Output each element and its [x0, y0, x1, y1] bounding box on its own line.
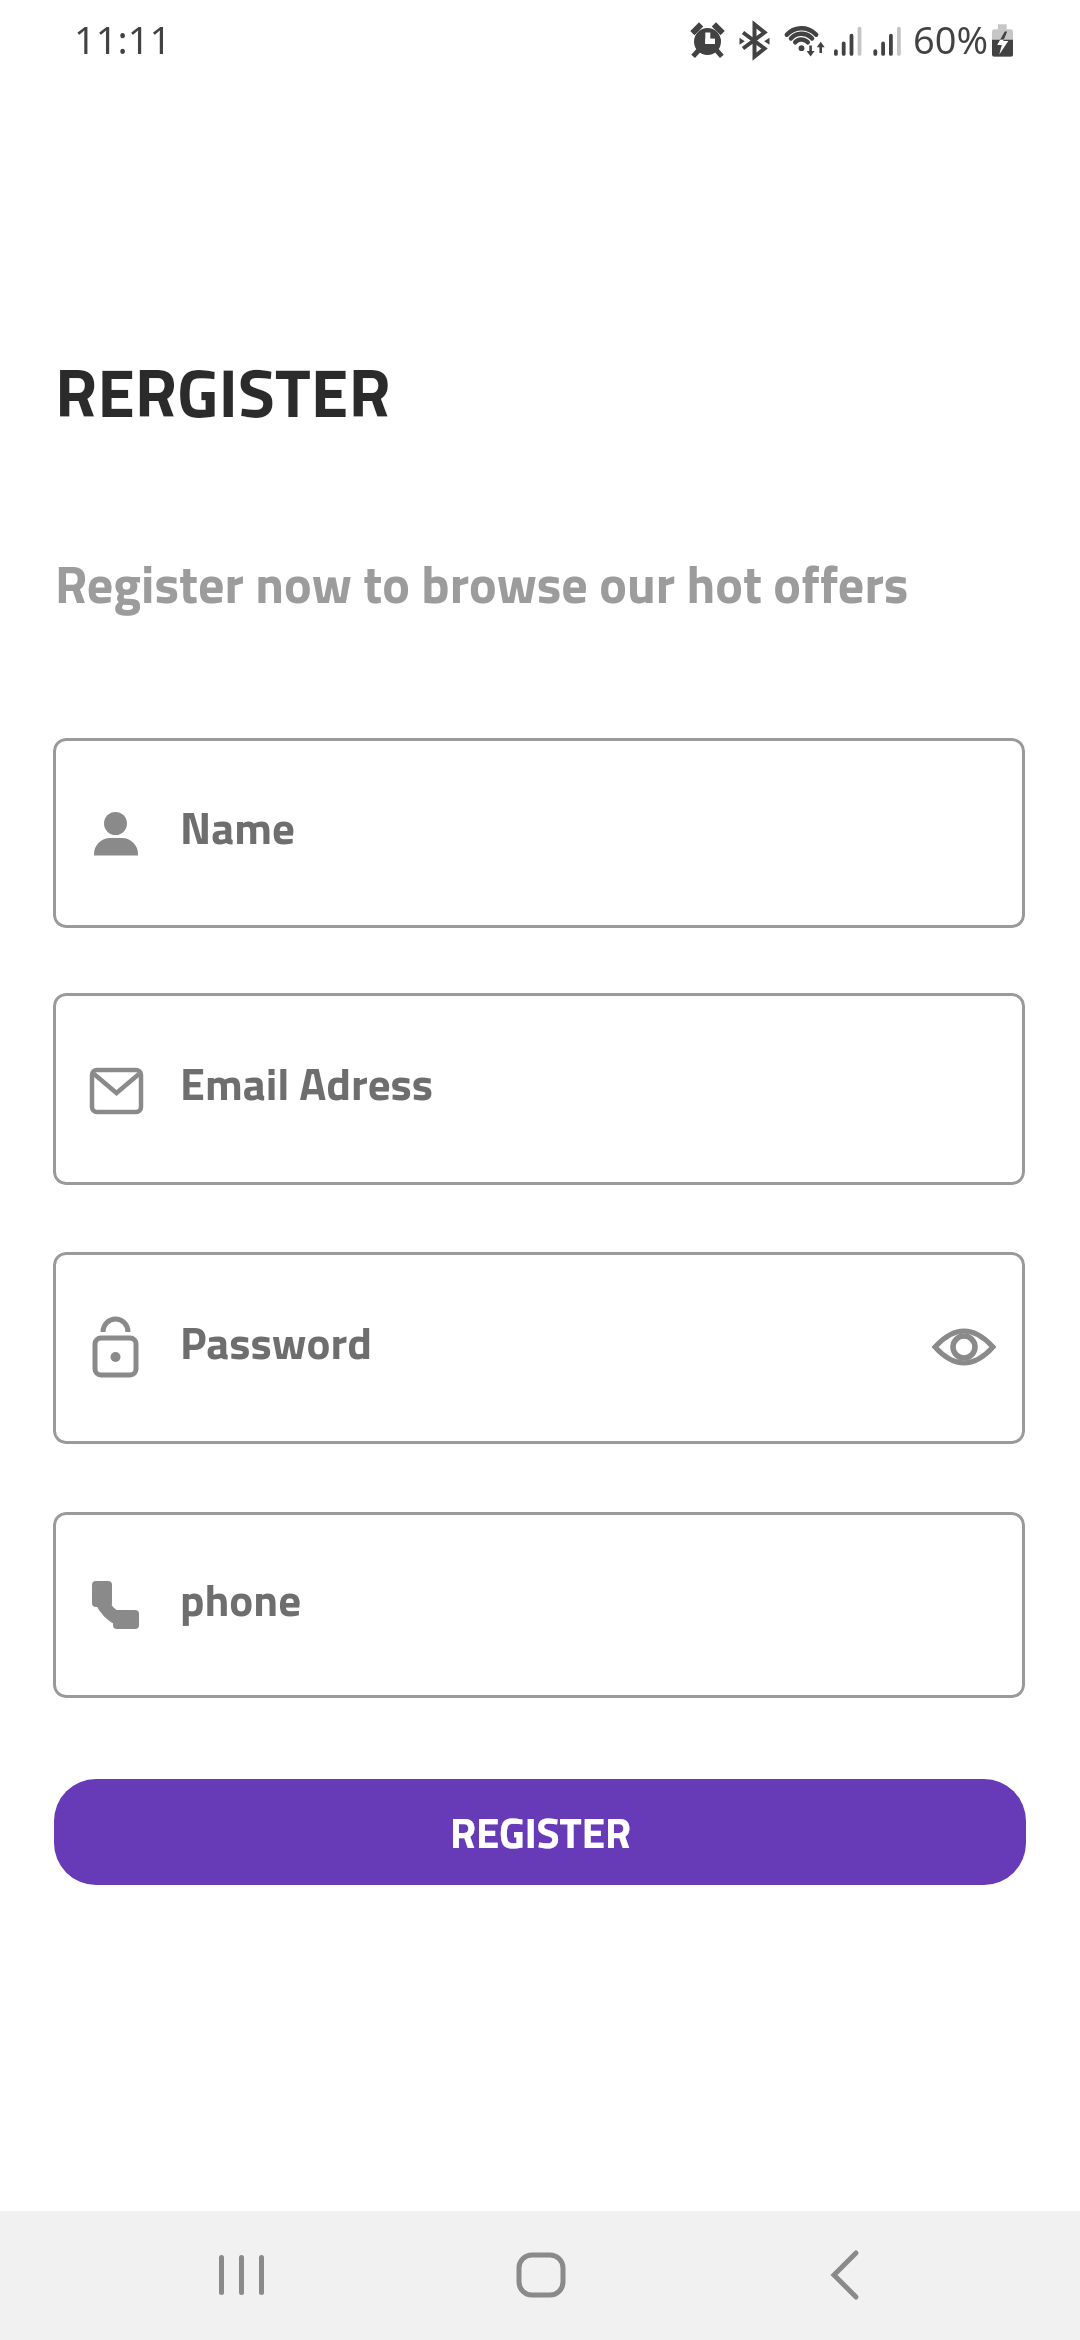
staticText: 60% — [913, 13, 989, 65]
button[interactable]: Password — [53, 1252, 1025, 1444]
button[interactable]: Name — [53, 738, 1025, 928]
button[interactable] — [190, 2241, 290, 2311]
button[interactable] — [800, 2241, 900, 2311]
staticText: Register now to browse our hot offers — [55, 544, 909, 623]
staticText: Name — [180, 793, 295, 861]
staticText: 11:11 — [74, 13, 172, 65]
staticText: RERGISTER — [55, 340, 391, 443]
button[interactable]: REGISTER — [54, 1779, 1026, 1885]
staticText: Email Adress — [180, 1049, 434, 1117]
button[interactable]: phone — [53, 1512, 1025, 1698]
staticText: phone — [180, 1565, 302, 1633]
staticText: Password — [180, 1308, 372, 1376]
button[interactable]: Email Adress — [53, 993, 1025, 1185]
staticText: REGISTER — [450, 1800, 631, 1864]
button[interactable] — [490, 2241, 590, 2311]
